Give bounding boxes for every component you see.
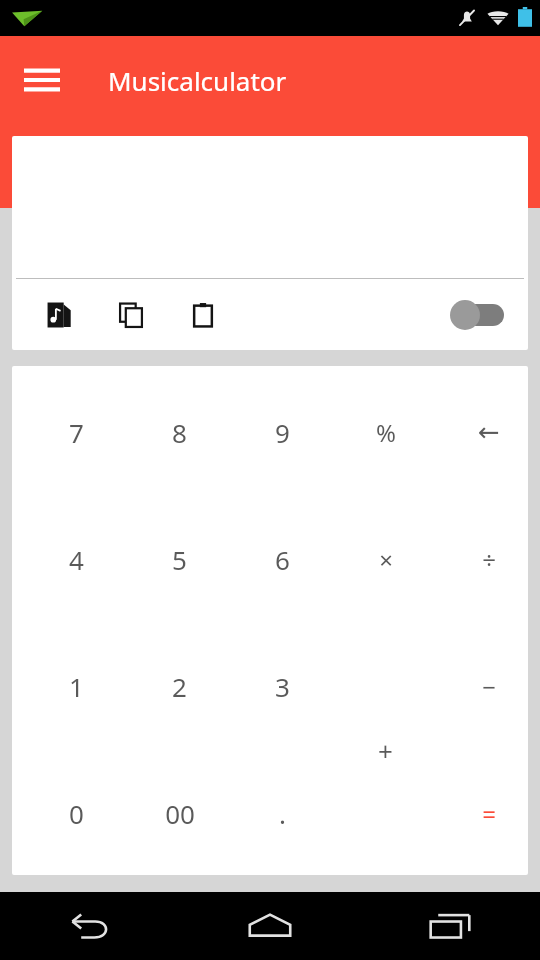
button[interactable]: Back: [0, 892, 180, 960]
button[interactable]: Minus: [437, 638, 528, 734]
staticText: =: [482, 797, 496, 830]
button[interactable]: Play as music: [30, 286, 88, 344]
button[interactable]: Paste: [174, 286, 232, 344]
button[interactable]: Decimal point: [231, 765, 334, 861]
button[interactable]: Multiply: [334, 511, 437, 607]
button[interactable]: %: [334, 384, 437, 480]
staticText: .: [279, 796, 286, 831]
staticText: 5: [172, 542, 187, 577]
staticText: 8: [172, 415, 187, 450]
button[interactable]: 3: [231, 638, 334, 734]
staticText: 7: [69, 415, 84, 450]
staticText: 3: [275, 669, 290, 704]
button[interactable]: Divide: [437, 511, 528, 607]
staticText: 00: [165, 796, 195, 831]
staticText: 0: [69, 796, 84, 831]
button[interactable]: 9: [231, 384, 334, 480]
staticText: ÷: [482, 543, 496, 576]
staticText: Musicalculator: [108, 63, 287, 98]
staticText: ×: [379, 543, 393, 576]
button[interactable]: 7: [25, 384, 128, 480]
button[interactable]: 2: [128, 638, 231, 734]
staticText: ←: [478, 417, 500, 447]
button[interactable]: 6: [231, 511, 334, 607]
button[interactable]: 00: [128, 765, 231, 861]
button[interactable]: 8: [128, 384, 231, 480]
button[interactable]: 1: [25, 638, 128, 734]
staticText: −: [482, 670, 496, 703]
staticText: +: [378, 733, 393, 768]
staticText: 6: [275, 542, 290, 577]
button[interactable]: 0: [25, 765, 128, 861]
button[interactable]: Plus: [334, 702, 437, 798]
button[interactable]: Equals: [437, 765, 528, 861]
button[interactable]: 5: [128, 511, 231, 607]
button[interactable]: Backspace: [437, 384, 528, 480]
button[interactable]: Home: [180, 892, 360, 960]
button[interactable]: Open navigation menu: [14, 52, 70, 108]
button[interactable]: Copy: [102, 286, 160, 344]
staticText: 9: [275, 415, 290, 450]
staticText: 4: [69, 542, 84, 577]
staticText: 1: [69, 669, 84, 704]
button[interactable]: Recent apps: [360, 892, 540, 960]
staticText: 2: [172, 669, 187, 704]
button[interactable]: 4: [25, 511, 128, 607]
staticText: %: [376, 416, 396, 449]
button[interactable]: Toggle music mode: [442, 291, 512, 339]
